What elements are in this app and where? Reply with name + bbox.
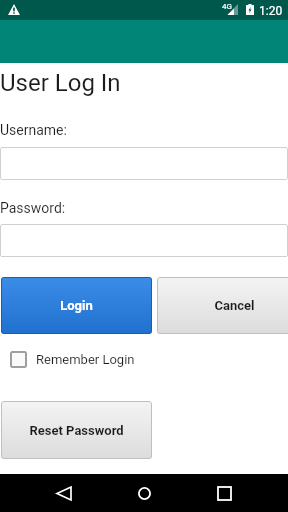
button[interactable] xyxy=(0,147,288,180)
staticText: Password: xyxy=(0,200,66,216)
button[interactable]: Back xyxy=(44,474,84,512)
staticText: 1:20 xyxy=(259,4,283,18)
button[interactable]: Remember Login xyxy=(10,351,135,368)
button[interactable] xyxy=(0,224,288,257)
staticText: Remember Login xyxy=(36,352,135,367)
button[interactable]: Login xyxy=(1,277,152,334)
staticText: Username: xyxy=(0,122,67,138)
staticText: Reset Password xyxy=(29,423,124,438)
staticText: User Log In xyxy=(0,69,121,97)
button[interactable]: Cancel xyxy=(157,277,288,334)
button[interactable]: Home xyxy=(124,474,164,512)
staticText: 4G xyxy=(222,2,232,11)
button[interactable]: Reset Password xyxy=(1,401,152,459)
staticText: Login xyxy=(60,298,93,313)
staticText: Cancel xyxy=(214,298,255,313)
button[interactable]: Recent apps xyxy=(204,474,244,512)
